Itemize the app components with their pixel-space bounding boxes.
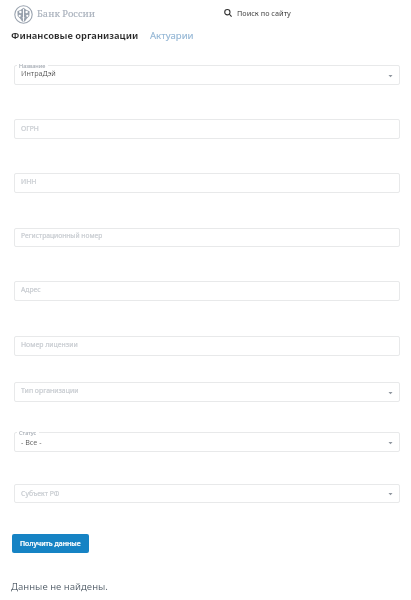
staticText: Поиск по сайту (237, 8, 291, 18)
button[interactable]: ИНН (14, 173, 400, 193)
button[interactable]: Тип организации (14, 382, 400, 402)
staticText: Данные не найдены. (11, 580, 108, 593)
staticText: Адрес (21, 285, 41, 294)
button[interactable]: Получить данные (12, 534, 89, 553)
staticText: ОГРН (21, 124, 39, 133)
staticText: Номер лицензии (21, 340, 78, 349)
button[interactable]: Номер лицензии (14, 336, 400, 356)
button[interactable]: ОГРН (14, 119, 400, 139)
staticText: Регистрационный номер (21, 231, 103, 240)
button[interactable]: Адрес (14, 281, 400, 301)
button[interactable]: Субъект РФ (14, 484, 400, 503)
button[interactable]: Банк России (14, 5, 96, 24)
button[interactable]: - Все - (14, 432, 400, 452)
staticText: - Все - (21, 437, 42, 447)
button[interactable]: Регистрационный номер (14, 228, 400, 247)
button[interactable]: Поиск (224, 8, 291, 18)
staticText: Статус (19, 429, 37, 437)
staticText: Тип организации (21, 386, 79, 395)
button[interactable]: ИнтраДэй (14, 65, 400, 85)
button[interactable]: Финансовые организации (11, 29, 139, 42)
staticText: ИнтраДэй (21, 68, 56, 78)
staticText: Субъект РФ (21, 489, 60, 498)
staticText: Банк России (37, 7, 96, 20)
button[interactable]: Актуарии (150, 29, 194, 42)
staticText: Получить данные (20, 539, 81, 548)
staticText: ИНН (21, 177, 37, 186)
staticText: Название (19, 62, 46, 70)
other: Поиск (224, 9, 232, 17)
